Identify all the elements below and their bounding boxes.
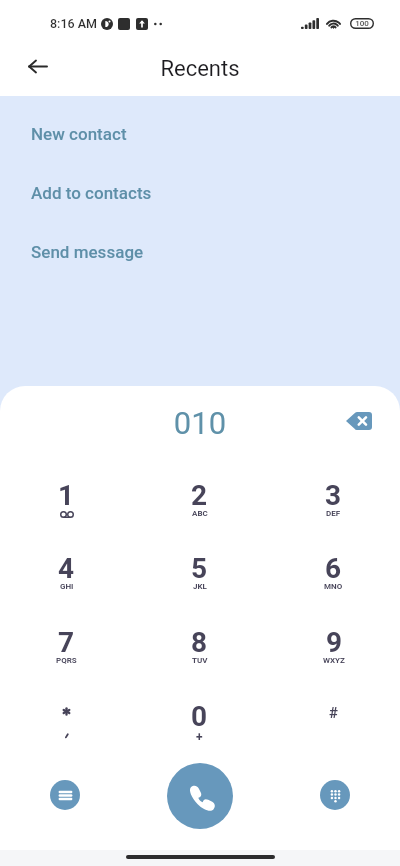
staticText: WXYZ (323, 656, 345, 665)
button[interactable]: 0 (133, 700, 266, 764)
staticText: 4 (58, 552, 75, 585)
button[interactable]: New contact (31, 124, 127, 144)
staticText: 0 (191, 700, 208, 733)
button[interactable]: 3 (267, 479, 400, 543)
button[interactable]: 4 (0, 552, 133, 616)
staticText: New contact (31, 124, 127, 144)
staticText: 6 (325, 552, 342, 585)
button[interactable]: Backspace (337, 399, 381, 443)
button[interactable]: 8 (133, 626, 266, 690)
button[interactable]: Dialpad (320, 780, 350, 810)
button[interactable]: Send message (31, 242, 144, 262)
button[interactable]: 2 (133, 479, 266, 543)
staticText: PQRS (56, 656, 77, 665)
button[interactable]: 1 (0, 479, 133, 543)
staticText: GHI (60, 582, 74, 591)
staticText: 8 (191, 626, 208, 659)
staticText: # (329, 704, 338, 722)
staticText: 2 (191, 479, 208, 512)
staticText: MNO (324, 582, 343, 591)
button[interactable]: Back (15, 44, 60, 89)
button[interactable]: 6 (267, 552, 400, 616)
staticText: 9 (326, 626, 343, 659)
staticText: 8:16 AM (50, 16, 98, 31)
staticText: JKL (193, 582, 207, 591)
staticText: 3 (325, 479, 342, 512)
staticText: TUV (192, 656, 208, 665)
button[interactable]: Add to contacts (31, 183, 152, 203)
button[interactable]: Call (167, 763, 233, 829)
staticText: 100 (355, 19, 369, 28)
staticText: Recents (0, 56, 400, 82)
button[interactable]: Call log (50, 780, 80, 810)
staticText: 1 (58, 479, 75, 512)
staticText: 010 (0, 405, 400, 441)
staticText: 5 (191, 552, 208, 585)
staticText: Add to contacts (31, 183, 152, 203)
button[interactable]: 9 (267, 626, 400, 690)
button[interactable]: 7 (0, 626, 133, 690)
staticText: DEF (326, 509, 341, 518)
staticText: + (196, 730, 203, 744)
staticText: 7 (58, 626, 75, 659)
button[interactable]: 5 (133, 552, 266, 616)
staticText: ABC (192, 509, 208, 518)
staticText: Send message (31, 242, 144, 262)
button[interactable] (0, 700, 133, 764)
button[interactable]: # (267, 700, 400, 764)
